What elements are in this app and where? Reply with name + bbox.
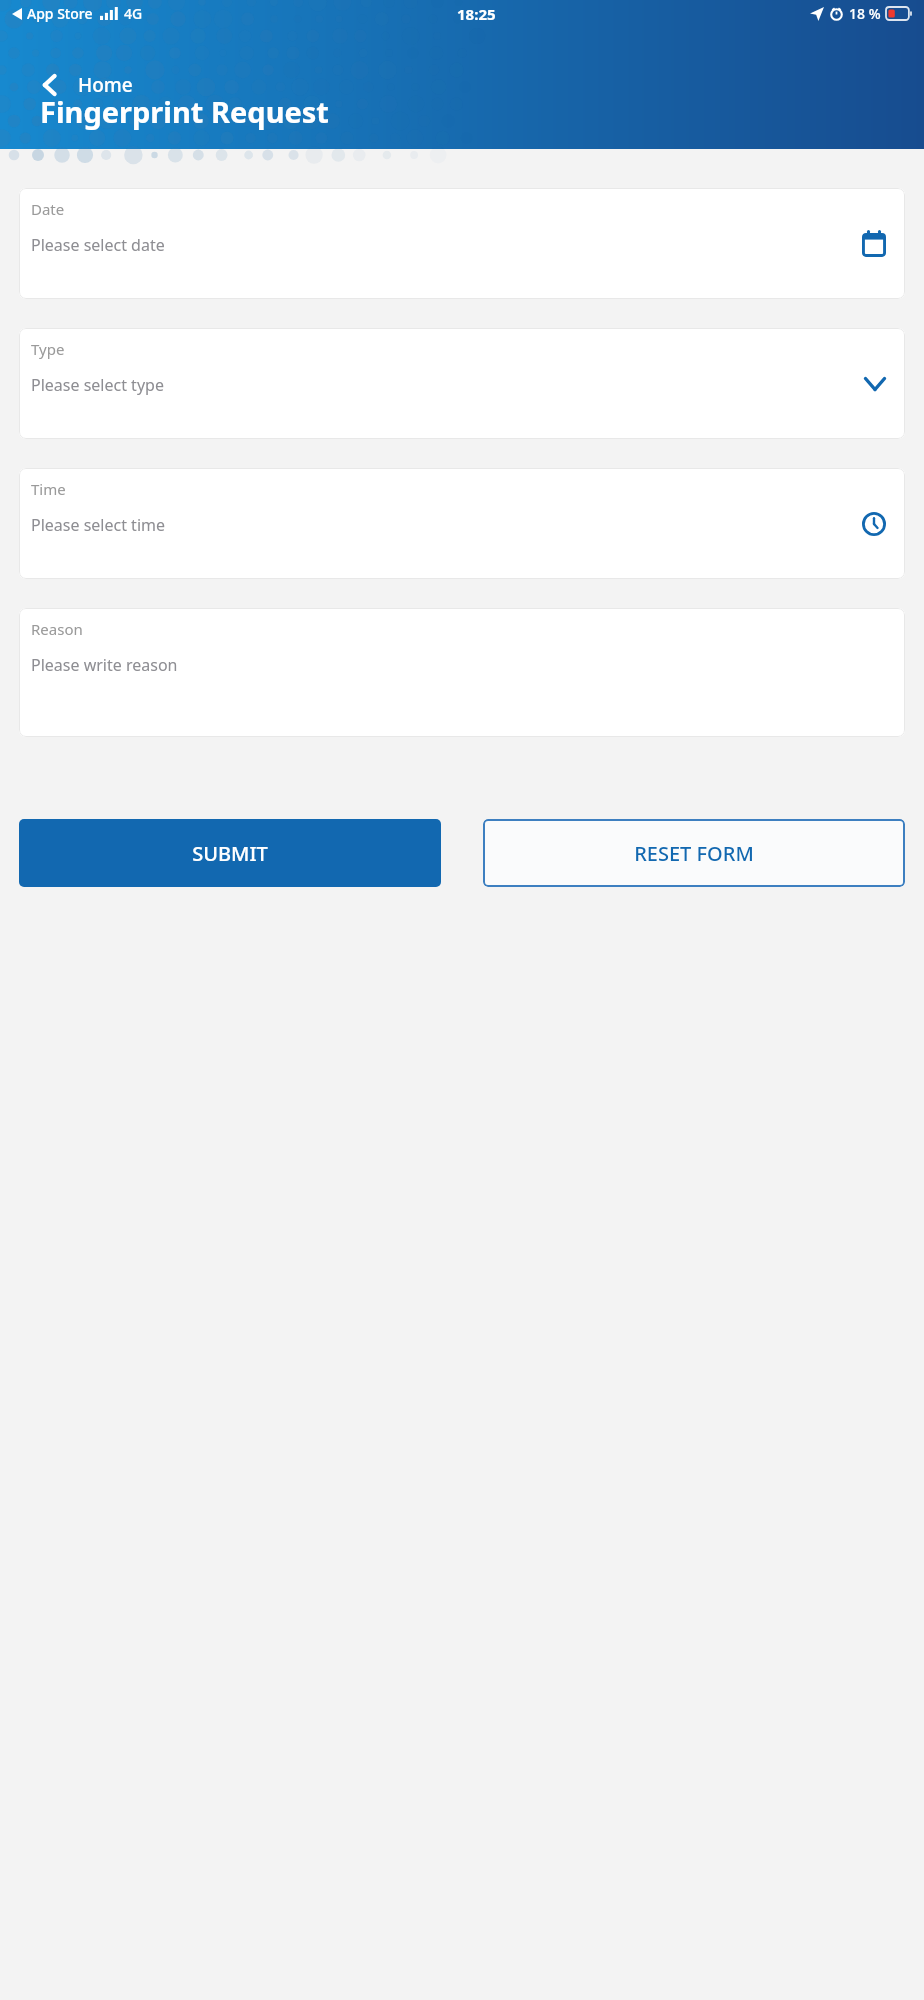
button[interactable]: Back bbox=[34, 66, 139, 104]
button[interactable]: RESET FORM bbox=[483, 819, 905, 887]
staticText: 18:25 bbox=[457, 4, 496, 24]
staticText: Time bbox=[31, 479, 66, 499]
staticText: 4G bbox=[124, 4, 143, 23]
staticText: Type bbox=[31, 339, 65, 359]
other: Back bbox=[40, 70, 62, 100]
button[interactable]: SUBMIT bbox=[19, 819, 441, 887]
staticText: Please select date bbox=[31, 234, 165, 256]
staticText: Please select type bbox=[31, 374, 164, 396]
staticText: Please select time bbox=[31, 514, 166, 536]
staticText: Date bbox=[31, 199, 65, 219]
button[interactable]: Select time bbox=[19, 468, 905, 579]
staticText: App Store bbox=[27, 4, 93, 23]
staticText: RESET FORM bbox=[634, 840, 754, 867]
button[interactable]: Select date bbox=[19, 188, 905, 299]
button[interactable]: Select type bbox=[19, 328, 905, 439]
staticText: Reason bbox=[31, 619, 83, 639]
staticText: Fingerprint Request bbox=[40, 92, 329, 131]
staticText: 18 % bbox=[849, 4, 881, 23]
staticText: SUBMIT bbox=[192, 840, 268, 867]
button[interactable]: Reason bbox=[19, 608, 905, 737]
staticText: Please write reason bbox=[31, 654, 178, 676]
staticText: Home bbox=[78, 72, 133, 98]
